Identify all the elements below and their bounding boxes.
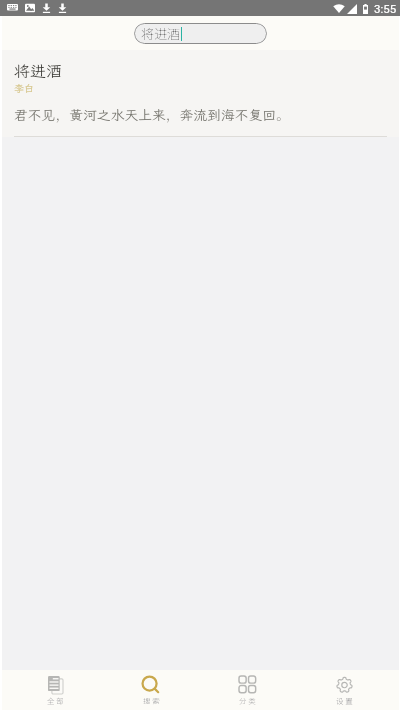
staticText: 君不见，黄河之水天上来，奔流到海不复回。 bbox=[14, 104, 290, 124]
staticText: 全 部 bbox=[47, 695, 64, 706]
button[interactable]: Settings bbox=[296, 670, 393, 710]
staticText: 李白 bbox=[14, 82, 34, 95]
staticText: 将进酒 bbox=[14, 60, 63, 81]
staticText: 搜 索 bbox=[143, 695, 160, 706]
staticText: 分 类 bbox=[239, 695, 256, 706]
button[interactable]: Categories bbox=[199, 670, 296, 710]
staticText: 将进酒 bbox=[141, 24, 181, 43]
staticText: 3:55 bbox=[374, 2, 397, 15]
button[interactable]: 将进酒 bbox=[0, 50, 400, 137]
button[interactable]: 将进酒 bbox=[134, 23, 267, 44]
button[interactable]: All poems bbox=[7, 670, 103, 710]
button[interactable]: Search bbox=[103, 670, 199, 710]
staticText: 设 置 bbox=[336, 695, 353, 706]
